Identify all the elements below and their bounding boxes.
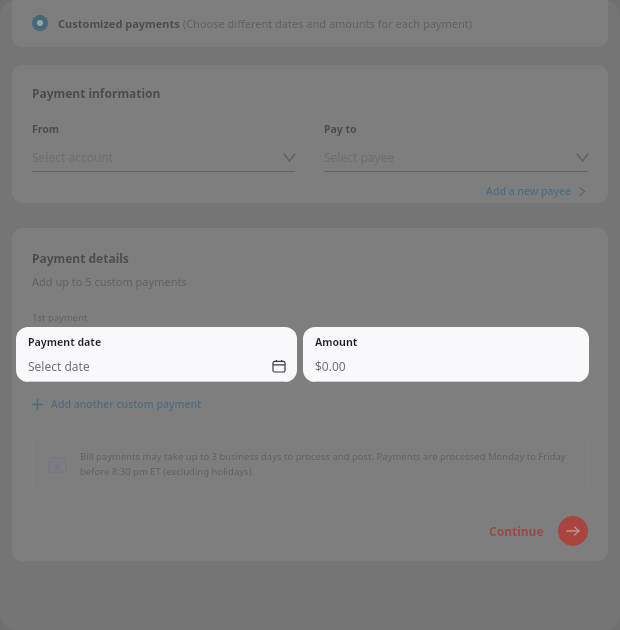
- staticText: Add another custom payment: [51, 397, 202, 411]
- staticText: Select account: [32, 149, 284, 165]
- staticText: Amount: [315, 335, 358, 349]
- button[interactable]: Payment date: [16, 327, 297, 382]
- staticText: Add a new payee: [486, 184, 572, 198]
- staticText: From: [32, 122, 60, 136]
- button[interactable]: Amount: [303, 327, 589, 382]
- staticText: Payment details: [32, 250, 129, 266]
- staticText: Add up to 5 custom payments: [32, 274, 187, 289]
- staticText: $0.00: [315, 358, 577, 374]
- button[interactable]: Add a new payee: [484, 181, 588, 201]
- staticText: Pay to: [324, 122, 357, 136]
- staticText: (Choose different dates and amounts for …: [180, 16, 472, 31]
- staticText: Select date: [28, 358, 273, 374]
- other: Open date picker: [273, 360, 285, 372]
- staticText: Payment date: [28, 335, 102, 349]
- button[interactable]: Pay to: [324, 122, 588, 172]
- button[interactable]: From: [32, 122, 295, 172]
- staticText: Payment information: [32, 85, 161, 101]
- staticText: 1st payment: [32, 311, 88, 324]
- staticText: Bill payments may take up to 3 business …: [80, 450, 570, 478]
- staticText: Customized payments: [58, 16, 180, 31]
- button[interactable]: Continue: [481, 514, 588, 548]
- staticText: Continue: [489, 523, 544, 539]
- button[interactable]: Add another custom payment: [32, 393, 202, 415]
- button[interactable]: Customized payments: [12, 0, 608, 47]
